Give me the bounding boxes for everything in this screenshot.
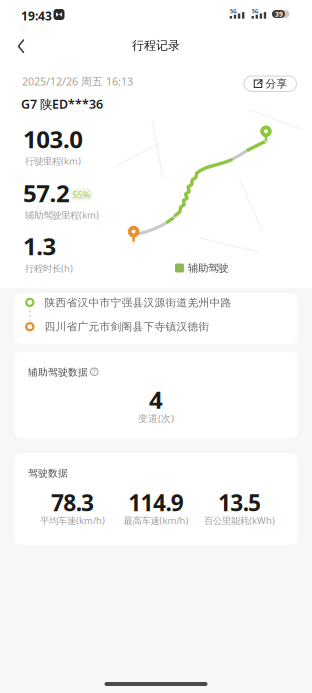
staticText: 陕西省汉中市宁强县汉源街道羌州中路 xyxy=(44,296,231,309)
staticText: 辅助驾驶里程(km) xyxy=(25,208,99,221)
staticText: 39 xyxy=(275,9,283,19)
staticText: 四川省广元市剑阁县下寺镇汉德街 xyxy=(44,320,209,333)
staticText: 5G xyxy=(230,7,237,15)
staticText: 13.5 xyxy=(218,487,261,518)
staticText: 辅助驾驶数据 xyxy=(28,366,88,378)
staticText: ? xyxy=(93,367,96,376)
staticText: 114.9 xyxy=(128,487,184,518)
staticText: 百公里能耗(kWh) xyxy=(204,514,275,527)
button[interactable]: 返回 xyxy=(0,0,44,64)
staticText: 1.3 xyxy=(23,230,57,262)
staticText: 辅助驾驶 xyxy=(188,261,228,275)
staticText: G7 陕ED***36 xyxy=(21,95,103,112)
staticText: 78.3 xyxy=(51,487,94,518)
staticText: 4 xyxy=(149,383,163,416)
staticText: 行程时长(h) xyxy=(25,262,73,275)
staticText: 5G xyxy=(252,7,259,15)
staticText: 分享 xyxy=(265,77,287,90)
staticText: 最高车速(km/h) xyxy=(123,514,188,527)
staticText: 55% xyxy=(72,188,90,201)
staticText: 驾驶数据 xyxy=(28,467,68,479)
staticText: 行程记录 xyxy=(132,38,180,53)
staticText: 19:43 xyxy=(21,7,52,24)
button[interactable]: 辅助驾驶数据说明 xyxy=(90,367,98,376)
staticText: 变道(次) xyxy=(138,411,174,425)
staticText: 行驶里程(km) xyxy=(25,154,81,167)
staticText: 103.0 xyxy=(23,123,83,155)
staticText: 平均车速(km/h) xyxy=(40,514,105,527)
staticText: 2025/12/26 周五 16:13 xyxy=(22,74,133,89)
staticText: 57.2 xyxy=(23,177,70,209)
button[interactable]: 分享 xyxy=(243,75,297,92)
